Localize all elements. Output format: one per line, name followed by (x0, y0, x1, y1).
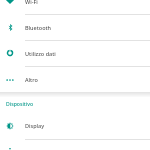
button[interactable]: Display (0, 113, 150, 139)
other: Display (6, 122, 14, 130)
other: Wi-Fi (4, 0, 16, 7)
staticText: Dispositivo (6, 100, 34, 107)
staticText: Wi-Fi (25, 0, 38, 5)
button[interactable]: Wi-Fi (0, 0, 150, 14)
other: Altro (6, 76, 14, 84)
staticText: Display (25, 122, 45, 129)
other: Utilizzo dati (6, 49, 14, 57)
staticText: Altro (25, 76, 38, 83)
button[interactable]: Utilizzo dati (0, 40, 150, 66)
button[interactable]: Altro (0, 66, 150, 92)
button[interactable]: Bluetooth (0, 14, 150, 40)
other: Notifiche (6, 148, 14, 150)
staticText: Bluetooth (25, 24, 52, 31)
button[interactable]: Notifiche (0, 139, 150, 150)
staticText: Utilizzo dati (25, 50, 56, 57)
